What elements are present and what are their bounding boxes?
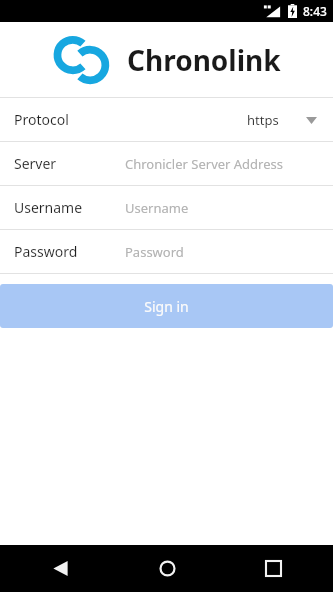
button[interactable]: Sign in <box>0 284 333 328</box>
staticText: Chronicler Server Address <box>125 155 284 173</box>
staticText: Username <box>125 199 189 217</box>
other: Select protocol <box>301 110 321 130</box>
button[interactable]: Password <box>0 230 333 273</box>
staticText: Username <box>14 198 83 217</box>
staticText: Server <box>14 154 57 173</box>
staticText: https <box>247 111 279 129</box>
button[interactable]: Recent apps <box>249 545 297 592</box>
staticText: 8:43 <box>303 3 327 19</box>
staticText: Sign in <box>144 297 189 316</box>
staticText: Password <box>125 243 184 261</box>
button[interactable]: Protocol <box>0 98 333 141</box>
staticText: Chronolink <box>127 41 281 79</box>
button[interactable]: Username <box>0 186 333 229</box>
staticText: Protocol <box>14 110 69 129</box>
button[interactable]: Back <box>36 545 84 592</box>
button[interactable]: Home <box>143 545 191 592</box>
button[interactable]: Server <box>0 142 333 185</box>
staticText: Password <box>14 242 78 261</box>
